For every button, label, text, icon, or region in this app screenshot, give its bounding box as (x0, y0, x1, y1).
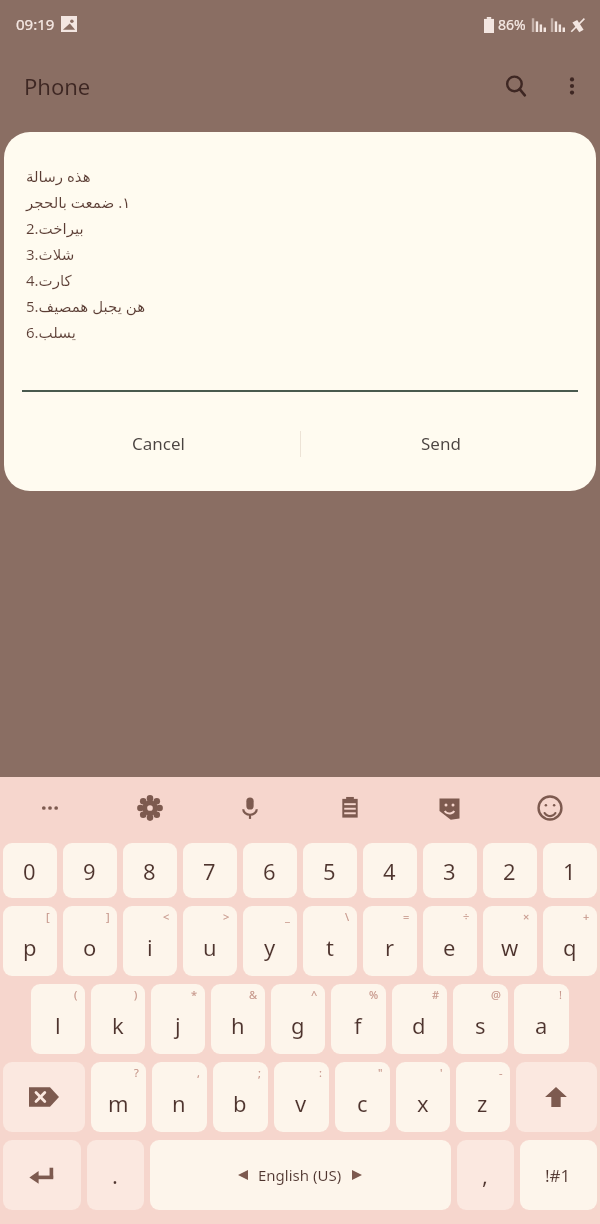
staticText: ] (106, 909, 110, 924)
button[interactable]: 1 (400, 138, 600, 222)
button[interactable]: % (331, 984, 386, 1054)
button[interactable]: Shift (516, 1062, 597, 1132)
staticText: , (482, 1160, 488, 1190)
button[interactable]: Search (488, 58, 544, 114)
staticText: 86% (498, 15, 526, 34)
button[interactable]: # (392, 984, 447, 1054)
button[interactable]: 4 (400, 248, 600, 332)
button[interactable]: English (US) (150, 1140, 451, 1210)
button[interactable]: , (457, 1140, 514, 1210)
button[interactable]: Settings (100, 777, 200, 839)
staticText: a (535, 1010, 548, 1040)
staticText: g (291, 1010, 305, 1040)
button[interactable]: > (183, 906, 237, 976)
staticText: Send (421, 432, 461, 455)
button[interactable]: = (363, 906, 417, 976)
staticText: ? (134, 1065, 139, 1080)
button[interactable]: 6 (0, 248, 200, 332)
button[interactable]: More (0, 777, 100, 839)
button[interactable]: 0 (3, 843, 57, 898)
staticText: 5 (323, 856, 336, 886)
staticText: % (369, 987, 379, 1002)
staticText: x (417, 1088, 429, 1118)
staticText: w (501, 932, 519, 962)
staticText: v (295, 1088, 307, 1118)
staticText: n (172, 1088, 186, 1118)
button[interactable]: Phone (18, 65, 97, 107)
button[interactable]: Stickers (400, 777, 500, 839)
staticText: هذه رسالة (26, 166, 91, 186)
button[interactable]: ) (91, 984, 145, 1054)
button[interactable]: : (274, 1062, 329, 1132)
button[interactable]: ; (213, 1062, 268, 1132)
button[interactable]: 2 (483, 843, 537, 898)
button[interactable]: 3 (423, 843, 477, 898)
button[interactable]: Send (301, 424, 582, 463)
button[interactable]: & (211, 984, 265, 1054)
staticText: 3 (443, 856, 456, 886)
staticText: 4.كارت (26, 270, 72, 290)
staticText: = (403, 909, 410, 924)
button[interactable]: !#1 (520, 1140, 597, 1210)
staticText: # (432, 987, 440, 1002)
button[interactable]: 7 (183, 843, 237, 898)
staticText: h (231, 1010, 245, 1040)
button[interactable]: 1 (543, 843, 597, 898)
button[interactable]: Enter (3, 1140, 81, 1210)
button[interactable]: 6 (243, 843, 297, 898)
button[interactable]: 4 (363, 843, 417, 898)
button[interactable]: Cancel (18, 424, 300, 463)
button[interactable]: ! (514, 984, 569, 1054)
staticText: 7 (203, 856, 216, 886)
button[interactable]: - (456, 1062, 510, 1132)
button[interactable]: 5 (303, 843, 357, 898)
button[interactable]: 9 (63, 843, 117, 898)
button[interactable]: [ (3, 906, 57, 976)
button[interactable]: ' (396, 1062, 450, 1132)
button[interactable]: @ (453, 984, 508, 1054)
staticText: d (412, 1010, 426, 1040)
staticText: > (223, 909, 230, 924)
staticText: !#1 (545, 1164, 571, 1187)
staticText: < (163, 909, 170, 924)
button[interactable]: Backspace (3, 1062, 85, 1132)
button[interactable]: . (87, 1140, 144, 1210)
button[interactable]: ^ (271, 984, 325, 1054)
button[interactable]: ] (63, 906, 117, 976)
staticText: , (197, 1065, 200, 1080)
staticText: s (475, 1010, 486, 1040)
staticText: 9 (83, 856, 96, 886)
staticText: . (112, 1160, 118, 1190)
staticText: + (583, 909, 590, 924)
button[interactable]: 8 (123, 843, 177, 898)
staticText: p (23, 932, 37, 962)
button[interactable]: , (152, 1062, 207, 1132)
button[interactable]: × (483, 906, 537, 976)
button[interactable]: 3 (0, 138, 200, 222)
staticText: 09:19 (16, 14, 55, 34)
staticText: 1 (563, 856, 576, 886)
staticText: English (US) (258, 1165, 342, 1185)
button[interactable]: " (335, 1062, 390, 1132)
staticText: 8 (143, 856, 156, 886)
button[interactable]: Emoji (500, 777, 600, 839)
button[interactable]: _ (243, 906, 297, 976)
button[interactable]: More options (544, 58, 600, 114)
button[interactable]: ÷ (423, 906, 477, 976)
staticText: b (233, 1088, 247, 1118)
staticText: ^ (311, 987, 318, 1002)
button[interactable]: Voice input (200, 777, 300, 839)
button[interactable] (22, 366, 578, 392)
button[interactable]: Clipboard (300, 777, 400, 839)
button[interactable]: \ (303, 906, 357, 976)
staticText: 3.شلاث (26, 244, 75, 264)
button[interactable]: + (543, 906, 597, 976)
button[interactable]: ? (91, 1062, 146, 1132)
button[interactable]: * (151, 984, 205, 1054)
button[interactable]: < (123, 906, 177, 976)
button[interactable]: ( (31, 984, 85, 1054)
